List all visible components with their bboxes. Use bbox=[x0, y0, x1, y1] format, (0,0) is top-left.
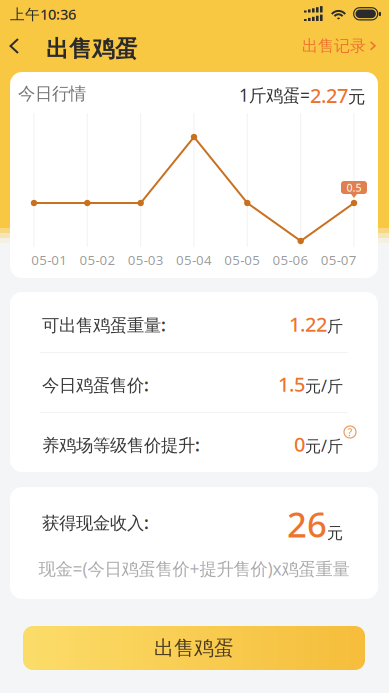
staticText: 1.5 bbox=[278, 371, 305, 397]
staticText: 0 bbox=[294, 431, 305, 457]
staticText: 05-03 bbox=[128, 251, 164, 269]
staticText: 出售鸡蛋 bbox=[154, 636, 234, 660]
staticText: 斤 bbox=[327, 317, 343, 336]
staticText: 2.27 bbox=[310, 82, 348, 109]
button[interactable]: 出售记录 bbox=[302, 36, 376, 56]
staticText: 05-04 bbox=[176, 251, 212, 269]
staticText: 元 bbox=[327, 523, 343, 543]
staticText: 元 bbox=[348, 86, 365, 108]
staticText: 出售记录 bbox=[302, 36, 366, 56]
staticText: 上午10:36 bbox=[10, 4, 76, 24]
staticText: 05-06 bbox=[272, 251, 308, 269]
staticText: ? bbox=[347, 425, 352, 439]
staticText: 0.5 bbox=[346, 180, 361, 195]
staticText: 今日行情 bbox=[18, 83, 86, 104]
staticText: 26 bbox=[287, 501, 327, 547]
staticText: 出售鸡蛋 bbox=[46, 35, 138, 63]
staticText: 05-02 bbox=[79, 251, 115, 269]
button[interactable]: Help bbox=[343, 425, 357, 439]
staticText: 05-07 bbox=[321, 251, 357, 269]
staticText: 养鸡场等级售价提升: bbox=[42, 433, 200, 456]
button[interactable]: 出售鸡蛋 bbox=[23, 626, 365, 670]
button[interactable]: Back bbox=[0, 28, 30, 64]
staticText: 获得现金收入: bbox=[42, 511, 149, 534]
staticText: 今日鸡蛋售价: bbox=[42, 373, 149, 396]
staticText: 元/斤 bbox=[305, 375, 343, 396]
staticText: 1斤鸡蛋= bbox=[239, 83, 310, 106]
staticText: 可出售鸡蛋重量: bbox=[42, 313, 166, 336]
staticText: 05-01 bbox=[31, 251, 67, 269]
staticText: 现金=(今日鸡蛋售价+提升售价)x鸡蛋重量 bbox=[38, 557, 349, 580]
staticText: 05-05 bbox=[224, 251, 260, 269]
staticText: 元/斤 bbox=[305, 435, 343, 456]
staticText: 1.22 bbox=[289, 311, 327, 337]
